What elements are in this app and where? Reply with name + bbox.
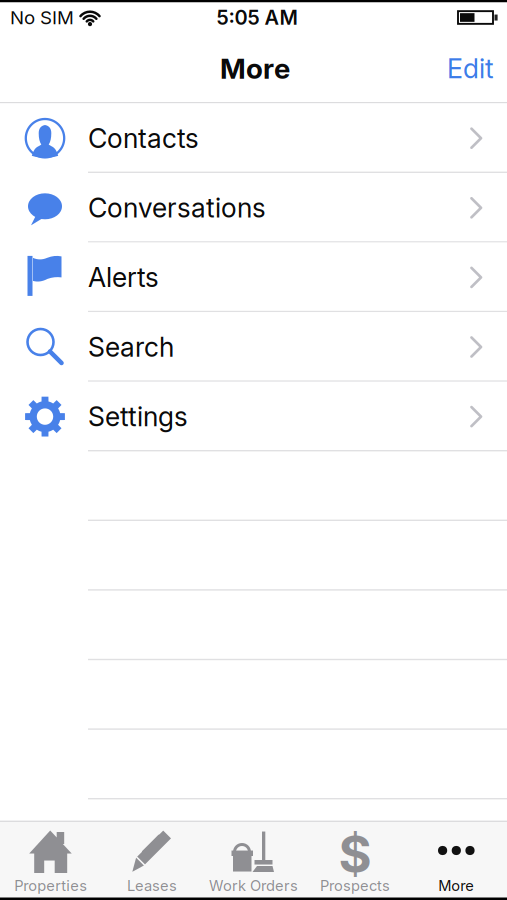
button[interactable]: Contacts (0, 103, 507, 173)
staticText: Settings (88, 401, 188, 432)
button[interactable]: Properties (0, 822, 101, 897)
staticText: Search (88, 331, 174, 363)
staticText: Work Orders (209, 877, 298, 894)
staticText: Edit (447, 53, 494, 84)
button[interactable]: More (406, 822, 507, 897)
staticText: Properties (14, 877, 87, 894)
staticText: Alerts (88, 262, 159, 293)
staticText: Contacts (88, 122, 199, 154)
staticText: No SIM (10, 6, 74, 28)
staticText: $ (338, 824, 371, 884)
staticText: Conversations (88, 192, 266, 224)
button[interactable]: Work Orders (203, 822, 304, 897)
button[interactable]: Conversations (0, 173, 507, 243)
staticText: Leases (127, 877, 177, 894)
staticText: 5:05 AM (216, 6, 297, 29)
staticText: More (438, 877, 474, 894)
button[interactable]: Edit (447, 53, 507, 84)
button[interactable]: Alerts (0, 243, 507, 312)
staticText: Prospects (320, 877, 390, 894)
button[interactable]: $ (304, 822, 406, 897)
button[interactable]: Search (0, 312, 507, 382)
staticText: More (220, 52, 290, 85)
button[interactable]: Leases (101, 822, 203, 897)
button[interactable]: Settings (0, 382, 507, 451)
